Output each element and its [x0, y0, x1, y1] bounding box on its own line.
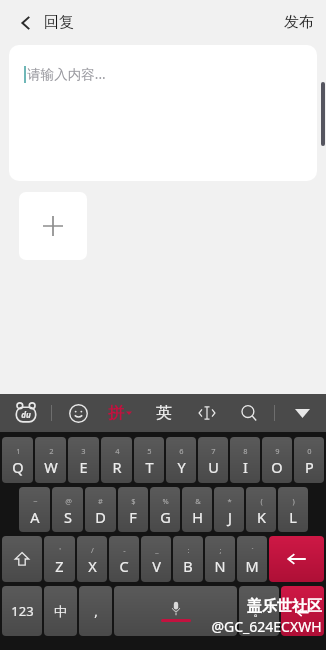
- button[interactable]: 2: [35, 437, 66, 483]
- staticText: ;: [219, 545, 222, 555]
- button[interactable]: 123: [2, 586, 42, 636]
- staticText: @: [65, 496, 72, 506]
- staticText: W: [44, 457, 58, 477]
- button[interactable]: 4: [101, 437, 132, 483]
- staticText: P: [305, 457, 314, 477]
- button[interactable]: 5: [134, 437, 164, 483]
- staticText: du: [21, 409, 31, 420]
- staticText: 回复: [44, 13, 74, 32]
- staticText: :: [187, 545, 190, 555]
- staticText: 7: [211, 446, 216, 456]
- button[interactable]: /: [77, 536, 107, 582]
- button[interactable]: &: [182, 487, 212, 532]
- staticText: -: [123, 545, 126, 555]
- staticText: 盖乐世社区: [247, 597, 322, 616]
- staticText: @GC_624ECXWH: [211, 617, 322, 636]
- staticText: J: [228, 507, 232, 527]
- button[interactable]: ': [44, 536, 75, 582]
- button[interactable]: 9: [262, 437, 292, 483]
- button[interactable]: _: [141, 536, 171, 582]
- button[interactable]: %: [150, 487, 180, 532]
- staticText: 6: [179, 446, 184, 456]
- staticText: *: [227, 496, 232, 506]
- button[interactable]: Back: [8, 5, 44, 41]
- staticText: 4: [115, 446, 120, 456]
- button[interactable]: Hide keyboard: [289, 400, 315, 426]
- staticText: &: [195, 496, 201, 506]
- staticText: O: [271, 457, 283, 477]
- button[interactable]: :: [173, 536, 203, 582]
- button[interactable]: 0: [294, 437, 324, 483]
- staticText: 8: [243, 446, 248, 456]
- staticText: 0: [307, 446, 312, 456]
- button[interactable]: ;: [205, 536, 235, 582]
- staticText: 2: [49, 446, 54, 456]
- staticText: H: [192, 507, 203, 527]
- button[interactable]: Emoji: [64, 399, 92, 427]
- button[interactable]: 6: [166, 437, 196, 483]
- button[interactable]: Shift: [2, 536, 42, 582]
- staticText: ): [292, 496, 295, 506]
- staticText: `: [251, 545, 254, 555]
- staticText: 英: [156, 403, 172, 423]
- button[interactable]: 1: [2, 437, 33, 483]
- staticText: 中: [54, 603, 67, 619]
- button[interactable]: Move cursor: [194, 400, 220, 426]
- staticText: 9: [275, 446, 280, 456]
- button[interactable]: Baidu input: [12, 399, 40, 427]
- staticText: ': [59, 545, 61, 555]
- staticText: /: [91, 545, 94, 555]
- button[interactable]: ): [278, 487, 308, 532]
- button[interactable]: Space, voice input: [114, 586, 237, 636]
- staticText: C: [119, 556, 129, 576]
- button[interactable]: Backspace: [269, 536, 324, 582]
- staticText: 拼: [108, 403, 124, 423]
- staticText: B: [183, 556, 193, 576]
- button[interactable]: Enter: [281, 586, 324, 636]
- staticText: ,: [94, 602, 98, 620]
- button[interactable]: @: [52, 487, 83, 532]
- staticText: %: [162, 496, 169, 506]
- staticText: E: [79, 457, 88, 477]
- staticText: Z: [55, 556, 64, 576]
- button[interactable]: #: [85, 487, 116, 532]
- staticText: I: [243, 457, 248, 477]
- staticText: R: [112, 457, 122, 477]
- staticText: T: [145, 457, 154, 477]
- button[interactable]: 8: [230, 437, 260, 483]
- button[interactable]: 。: [239, 586, 279, 636]
- button[interactable]: Search: [236, 400, 262, 426]
- staticText: L: [289, 507, 297, 527]
- staticText: V: [152, 556, 161, 576]
- button[interactable]: 7: [198, 437, 228, 483]
- staticText: X: [88, 556, 97, 576]
- staticText: F: [129, 507, 137, 527]
- button[interactable]: ,: [79, 586, 112, 636]
- staticText: A: [30, 507, 40, 527]
- staticText: 3: [81, 446, 86, 456]
- staticText: 1: [16, 446, 21, 456]
- staticText: N: [214, 556, 226, 576]
- button[interactable]: `: [237, 536, 267, 582]
- staticText: S: [64, 507, 72, 527]
- button[interactable]: 中: [44, 586, 77, 636]
- button[interactable]: 请输入内容...: [9, 45, 317, 181]
- staticText: 。: [253, 603, 266, 619]
- staticText: (: [260, 496, 263, 506]
- button[interactable]: (: [246, 487, 276, 532]
- button[interactable]: ~: [19, 487, 50, 532]
- button[interactable]: $: [118, 487, 148, 532]
- staticText: ~: [33, 496, 38, 506]
- button[interactable]: Add image: [19, 192, 87, 260]
- button[interactable]: -: [109, 536, 139, 582]
- button[interactable]: 3: [68, 437, 99, 483]
- button[interactable]: 发布: [272, 7, 326, 38]
- staticText: G: [160, 507, 171, 527]
- staticText: 123: [11, 602, 34, 620]
- button[interactable]: 拼: [106, 403, 134, 423]
- button[interactable]: 英: [152, 403, 176, 423]
- staticText: 请输入内容...: [27, 65, 106, 83]
- staticText: Q: [12, 457, 24, 477]
- staticText: _: [155, 545, 159, 555]
- button[interactable]: *: [214, 487, 244, 532]
